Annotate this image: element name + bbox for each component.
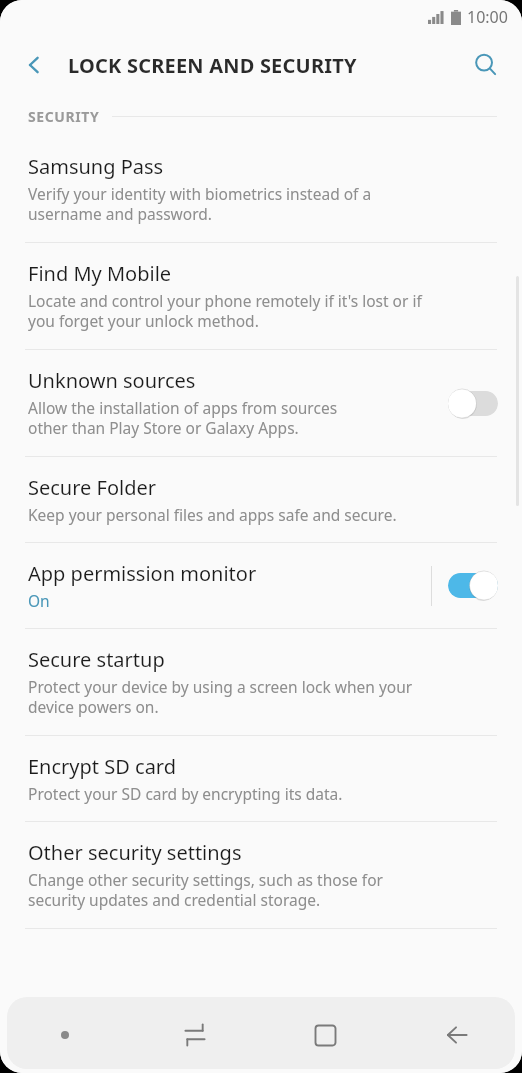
button[interactable]: Find My Mobile [0, 243, 522, 349]
button[interactable]: Back [8, 39, 60, 91]
staticText: Secure startup [28, 646, 165, 673]
button[interactable]: Menu [0, 999, 130, 1071]
button[interactable]: App permission monitor [0, 543, 522, 628]
button[interactable]: Toggle on [448, 570, 498, 601]
staticText: Find My Mobile [28, 260, 172, 287]
button[interactable]: Search [460, 39, 512, 91]
staticText: App permission monitor [28, 560, 257, 587]
staticText: Other security settings [28, 839, 242, 866]
staticText: On [28, 590, 50, 611]
button[interactable]: Secure Folder [0, 457, 522, 542]
button[interactable]: Home [260, 999, 391, 1071]
button[interactable]: Back [391, 999, 522, 1071]
staticText: SECURITY [28, 107, 100, 126]
button[interactable]: Samsung Pass [0, 136, 522, 242]
button[interactable]: Secure startup [0, 629, 522, 735]
button[interactable]: Encrypt SD card [0, 736, 522, 821]
button[interactable]: Other security settings [0, 822, 522, 928]
staticText: Locate and control your phone remotely i… [28, 290, 422, 332]
staticText: Unknown sources [28, 367, 196, 394]
staticText: Change other security settings, such as … [28, 869, 383, 911]
staticText: Secure Folder [28, 474, 157, 501]
staticText: LOCK SCREEN AND SECURITY [68, 52, 357, 79]
staticText: Encrypt SD card [28, 753, 177, 780]
staticText: Allow the installation of apps from sour… [28, 397, 338, 439]
staticText: 10:00 [467, 6, 508, 28]
staticText: Protect your device by using a screen lo… [28, 676, 413, 718]
button[interactable]: Recent apps [130, 999, 260, 1071]
staticText: Keep your personal files and apps safe a… [28, 504, 397, 525]
button[interactable]: Unknown sources [0, 350, 522, 456]
staticText: Protect your SD card by encrypting its d… [28, 783, 343, 804]
button[interactable]: Toggle off [448, 388, 498, 419]
staticText: Verify your identity with biometrics ins… [28, 183, 372, 225]
staticText: Samsung Pass [28, 153, 164, 180]
